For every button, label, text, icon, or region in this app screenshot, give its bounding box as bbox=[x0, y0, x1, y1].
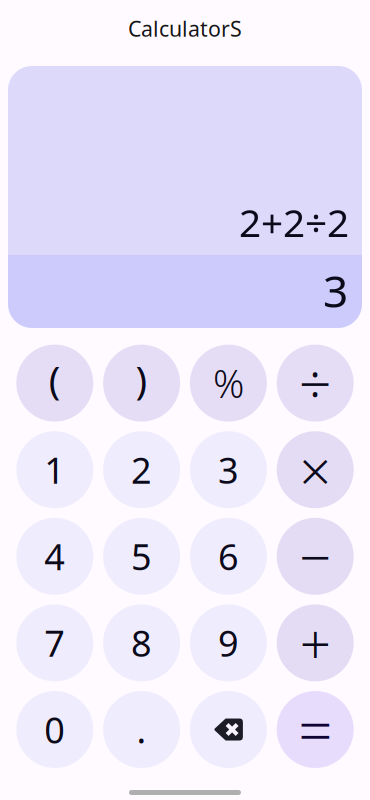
button[interactable]: 3 bbox=[190, 431, 267, 508]
button[interactable]: + bbox=[277, 604, 354, 681]
staticText: 5 bbox=[131, 532, 152, 580]
button[interactable]: 8 bbox=[103, 604, 180, 681]
staticText: 3 bbox=[323, 261, 348, 320]
button[interactable]: 4 bbox=[16, 518, 93, 595]
button[interactable]: 6 bbox=[190, 518, 267, 595]
staticText: ÷ bbox=[299, 345, 332, 421]
staticText: 2+2÷2 bbox=[239, 197, 349, 248]
button[interactable]: × bbox=[277, 431, 354, 508]
button[interactable]: ) bbox=[103, 345, 180, 422]
staticText: 0 bbox=[44, 706, 65, 753]
staticText: 1 bbox=[44, 446, 65, 494]
staticText: = bbox=[298, 690, 332, 769]
staticText: 3 bbox=[218, 446, 239, 494]
button[interactable]: % bbox=[190, 345, 267, 422]
button[interactable]: = bbox=[277, 691, 354, 768]
button[interactable]: ( bbox=[16, 345, 93, 422]
staticText: CalculatorS bbox=[128, 14, 242, 43]
staticText: . bbox=[137, 706, 147, 753]
button[interactable]: 0 bbox=[16, 691, 93, 768]
button[interactable]: 2 bbox=[103, 431, 180, 508]
button[interactable]: 1 bbox=[16, 431, 93, 508]
staticText: + bbox=[300, 607, 331, 679]
button[interactable]: Delete bbox=[190, 691, 267, 768]
button[interactable]: ÷ bbox=[277, 345, 354, 422]
staticText: − bbox=[299, 519, 331, 593]
button[interactable]: . bbox=[103, 691, 180, 768]
staticText: 2 bbox=[131, 446, 152, 494]
staticText: × bbox=[299, 432, 331, 507]
button[interactable]: 9 bbox=[190, 604, 267, 681]
staticText: 6 bbox=[218, 532, 239, 580]
button[interactable]: 5 bbox=[103, 518, 180, 595]
button[interactable]: − bbox=[277, 518, 354, 595]
staticText: % bbox=[213, 357, 244, 409]
staticText: 7 bbox=[44, 619, 65, 667]
staticText: 8 bbox=[131, 619, 152, 667]
staticText: 4 bbox=[44, 532, 65, 580]
staticText: ) bbox=[136, 353, 148, 405]
button[interactable]: 7 bbox=[16, 604, 93, 681]
staticText: ( bbox=[49, 353, 61, 405]
staticText: 9 bbox=[218, 619, 239, 667]
